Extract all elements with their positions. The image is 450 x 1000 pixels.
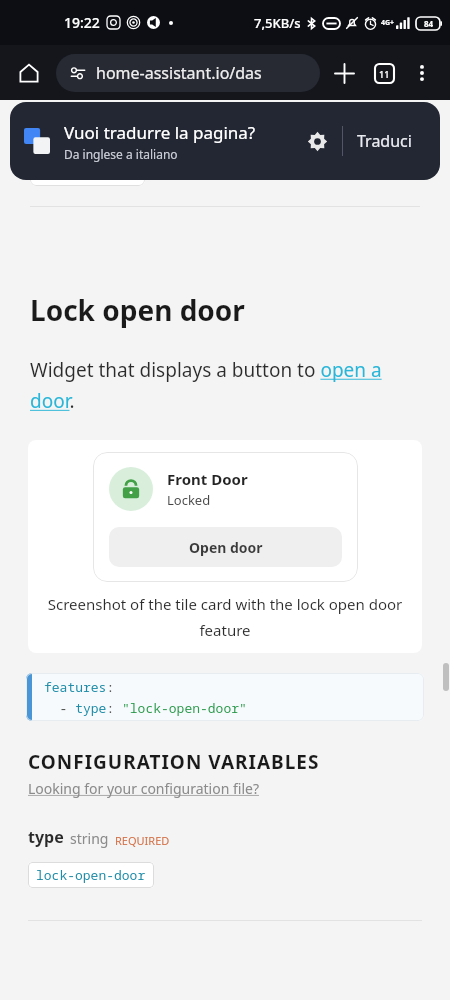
staticText: Locked bbox=[167, 491, 211, 509]
button[interactable]: Traduci bbox=[343, 122, 426, 160]
staticText: Screenshot of the tile card with the loc… bbox=[34, 594, 416, 641]
staticText: - type: "lock-open-door" bbox=[44, 699, 247, 717]
staticText: 7,5KB/s bbox=[254, 14, 301, 32]
staticText: 84 bbox=[424, 18, 434, 29]
staticText: Front Door bbox=[167, 469, 248, 489]
staticText: 4G+ bbox=[381, 18, 395, 28]
staticText: 11 bbox=[379, 68, 390, 80]
button[interactable]: home-assistant.io/das bbox=[56, 54, 320, 92]
button[interactable]: New tab bbox=[324, 53, 364, 93]
staticText: lock-open-door bbox=[36, 866, 146, 884]
staticText: Lock open door bbox=[30, 291, 245, 329]
staticText: string bbox=[70, 829, 109, 848]
button[interactable]: Home bbox=[10, 54, 48, 92]
staticText: CONFIGURATION VARIABLES bbox=[28, 749, 320, 775]
button[interactable]: Looking for your configuration file? bbox=[28, 779, 259, 798]
button[interactable]: Tabs, 11 open bbox=[364, 53, 404, 93]
staticText: Open door bbox=[189, 538, 263, 557]
staticText: home-assistant.io/das bbox=[96, 62, 262, 84]
button[interactable]: Open door bbox=[109, 527, 342, 567]
button[interactable]: Vuoi tradurre la pagina? bbox=[10, 102, 440, 180]
staticText: type bbox=[28, 826, 64, 848]
button[interactable]: Translate settings bbox=[298, 122, 336, 160]
staticText: Da inglese a italiano bbox=[64, 146, 178, 162]
staticText: 19:22 bbox=[64, 13, 100, 32]
button[interactable]: More options bbox=[404, 55, 440, 91]
staticText: Traduci bbox=[357, 130, 412, 152]
staticText: REQUIRED bbox=[115, 833, 170, 848]
staticText: Vuoi tradurre la pagina? bbox=[64, 121, 256, 144]
staticText: features: bbox=[44, 678, 115, 696]
staticText: Widget that displays a button to open a … bbox=[30, 357, 420, 414]
